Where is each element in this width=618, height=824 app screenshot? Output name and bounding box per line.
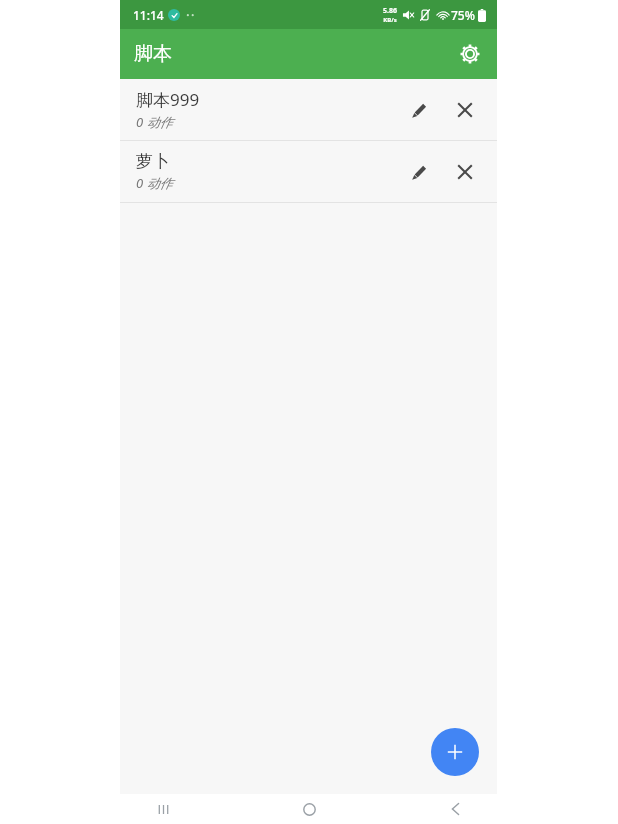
staticText: 0 动作 — [136, 174, 173, 192]
button[interactable]: Add script — [431, 728, 479, 776]
button[interactable]: Settings — [452, 36, 488, 72]
button[interactable]: Recent apps — [90, 794, 236, 824]
staticText: 萝卜 — [136, 151, 170, 172]
button[interactable]: Edit — [398, 90, 438, 130]
button[interactable]: 萝卜 — [120, 141, 497, 202]
button[interactable]: Delete — [445, 152, 485, 192]
staticText: 0 动作 — [136, 113, 173, 131]
button[interactable]: Home — [236, 794, 382, 824]
button[interactable]: Edit — [398, 152, 438, 192]
button[interactable]: Delete — [445, 90, 485, 130]
staticText: 5.86 — [383, 6, 397, 16]
button[interactable]: Back — [382, 794, 528, 824]
staticText: 11:14 — [133, 7, 164, 23]
staticText: 脚本999 — [136, 88, 200, 111]
button[interactable]: 脚本999 — [120, 79, 497, 140]
staticText: 脚本 — [134, 42, 172, 66]
staticText: 75% — [451, 7, 475, 23]
staticText: KB/s — [383, 16, 397, 24]
